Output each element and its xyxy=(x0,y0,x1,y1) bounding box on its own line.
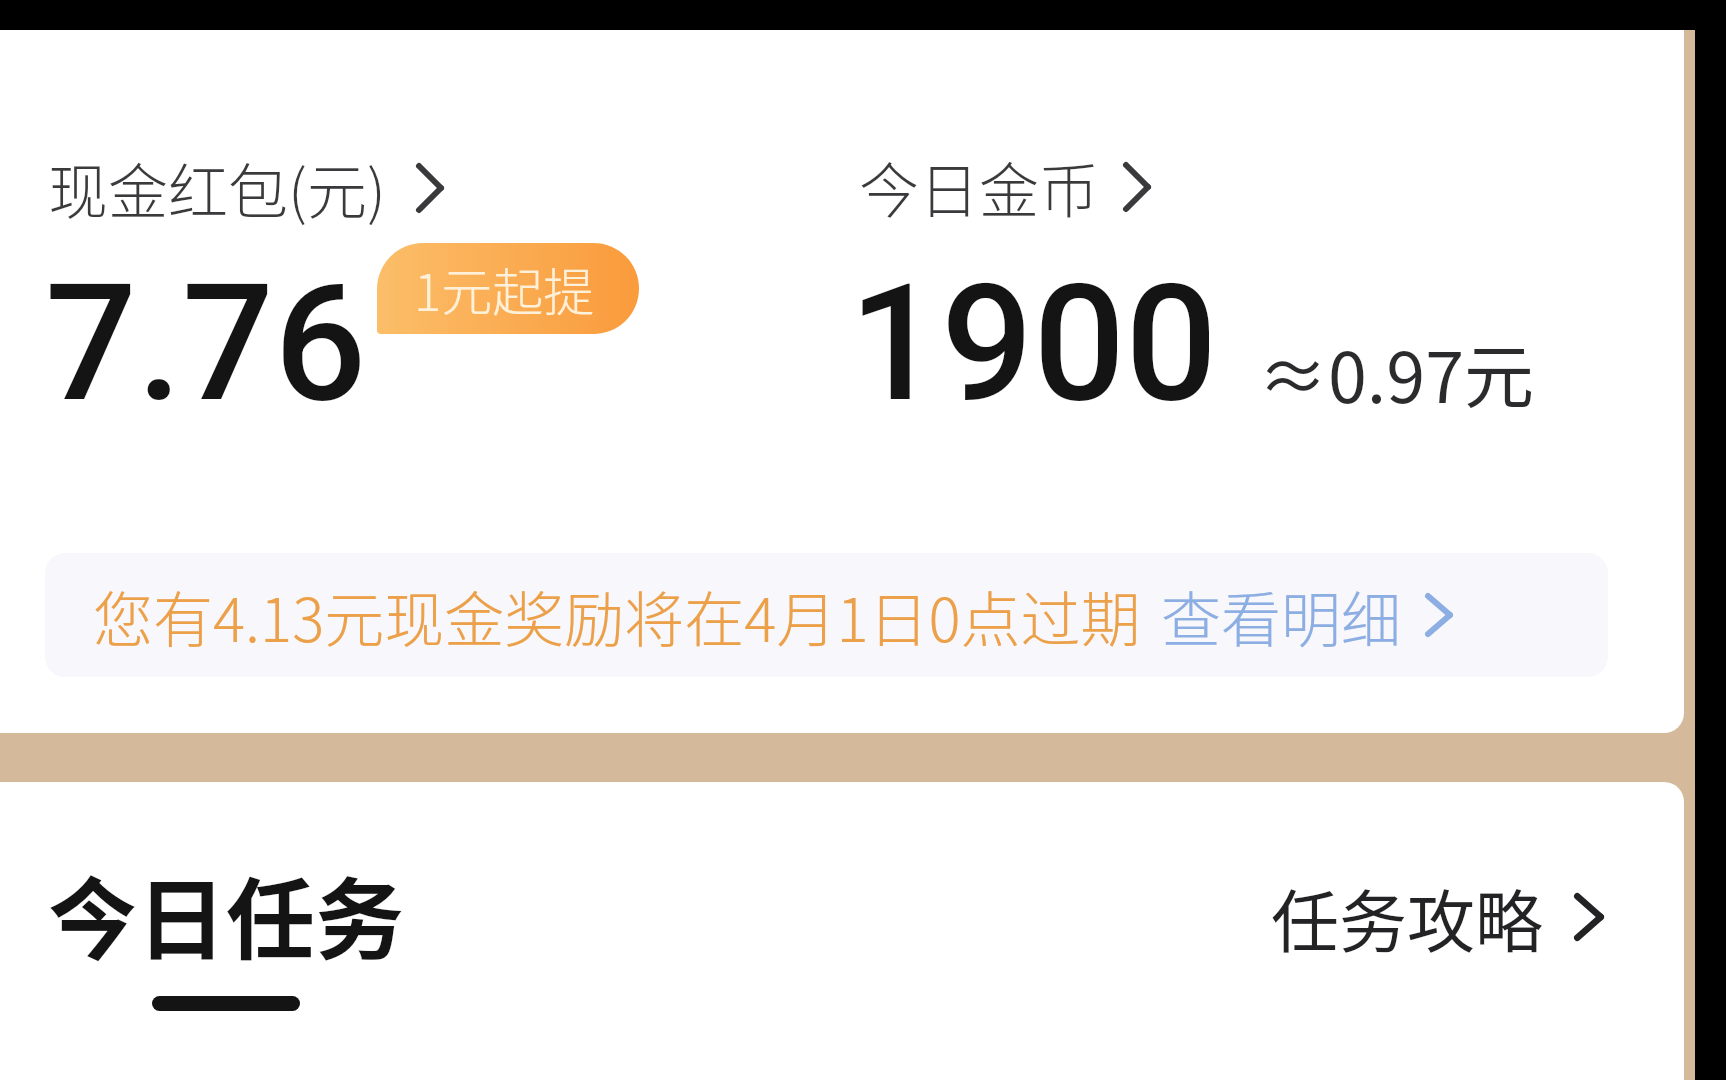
button[interactable]: 今日任务 xyxy=(48,842,468,1012)
staticText: 今日任务 xyxy=(48,849,404,978)
staticText: 1900 xyxy=(849,249,1218,439)
staticText: 您有4.13元现金奖励将在4月1日0点过期 xyxy=(93,572,1141,659)
staticText: 今日金币 xyxy=(859,143,1099,230)
button[interactable]: 您有4.13元现金奖励将在4月1日0点过期 xyxy=(45,553,1608,677)
staticText: 任务攻略 xyxy=(1271,868,1544,966)
button[interactable]: 今日金币 xyxy=(859,143,1151,230)
button[interactable]: 1元起提 xyxy=(377,243,639,334)
staticText: 查看明细 xyxy=(1161,572,1401,659)
button[interactable]: 任务攻略 xyxy=(1271,868,1604,966)
staticText: 现金红包(元) xyxy=(48,144,386,231)
staticText: 1元起提 xyxy=(414,252,595,326)
staticText: 7.76 xyxy=(45,249,367,439)
staticText: ≈0.97元 xyxy=(1258,322,1535,423)
button[interactable]: 现金红包(元) xyxy=(48,144,444,231)
